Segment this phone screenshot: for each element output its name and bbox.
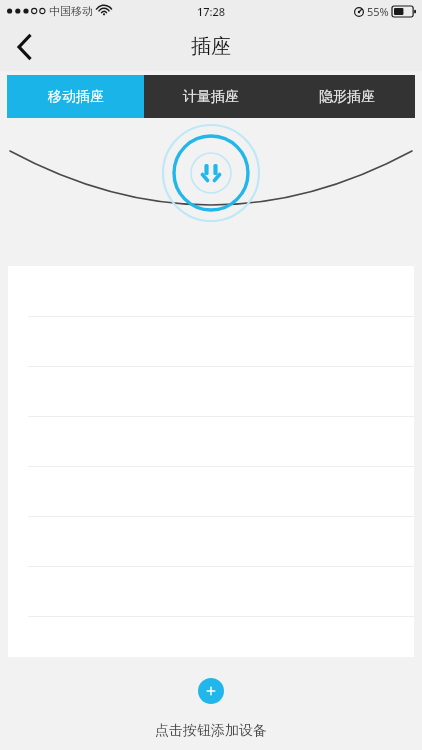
staticText: 17:28 [197, 4, 226, 19]
staticText: 隐形插座 [319, 88, 375, 106]
staticText: 55% [367, 4, 389, 19]
staticText: 点击按钮添加设备 [155, 722, 267, 740]
button[interactable]: Add device [198, 678, 224, 704]
button[interactable]: 移动插座 [7, 75, 144, 118]
button[interactable]: Socket [161, 123, 261, 223]
button[interactable]: Back [0, 23, 48, 71]
button[interactable]: 计量插座 [144, 75, 278, 118]
staticText: 插座 [191, 34, 231, 59]
staticText: 中国移动 [49, 4, 93, 18]
button[interactable]: 隐形插座 [278, 75, 415, 118]
staticText: 计量插座 [183, 88, 239, 106]
staticText: 移动插座 [48, 88, 104, 106]
